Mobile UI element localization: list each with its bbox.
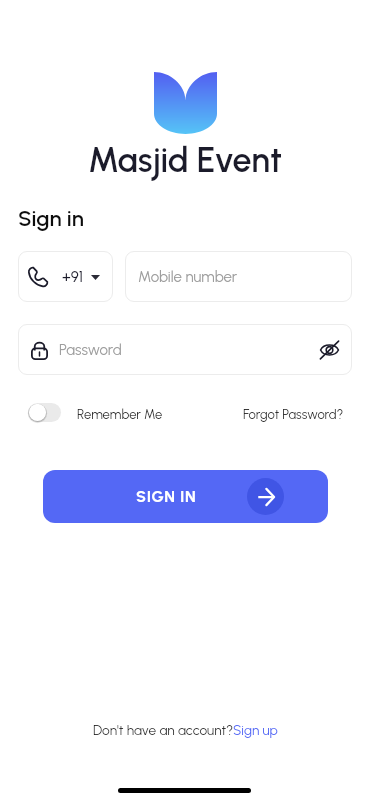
staticText: Sign in	[18, 205, 84, 231]
button[interactable]: Show password	[309, 330, 349, 370]
staticText: Password	[59, 341, 122, 359]
staticText: Masjid Event	[0, 140, 370, 181]
button[interactable]: Forgot Password?	[243, 407, 344, 423]
staticText: Remember Me	[77, 407, 163, 423]
staticText: +91	[62, 268, 83, 286]
button[interactable]: Mobile number	[125, 251, 352, 302]
button[interactable]: Remember Me	[28, 403, 163, 422]
staticText: Mobile number	[138, 268, 238, 286]
button[interactable]: SIGN IN	[43, 470, 328, 523]
button[interactable]: Country code +91	[18, 251, 113, 302]
button[interactable]: Password	[18, 324, 352, 375]
staticText: SIGN IN	[136, 487, 197, 506]
button[interactable]: Don't have an account?Sign up	[93, 722, 278, 738]
